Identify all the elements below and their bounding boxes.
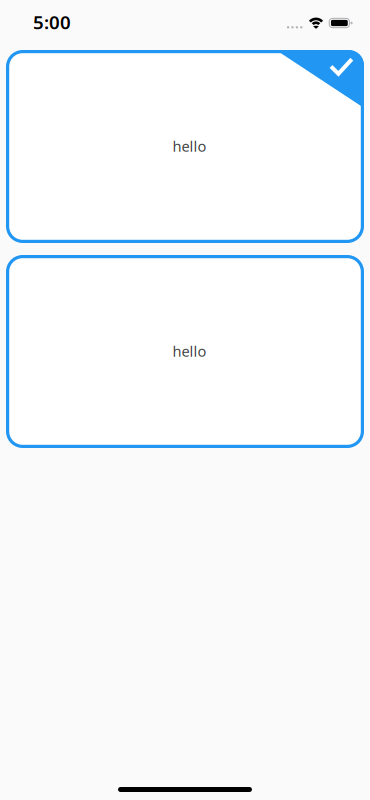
staticText: hello: [172, 341, 206, 361]
button[interactable]: hello: [6, 50, 364, 243]
staticText: 5:00: [33, 10, 71, 34]
staticText: hello: [172, 136, 206, 156]
button[interactable]: hello: [6, 255, 364, 448]
